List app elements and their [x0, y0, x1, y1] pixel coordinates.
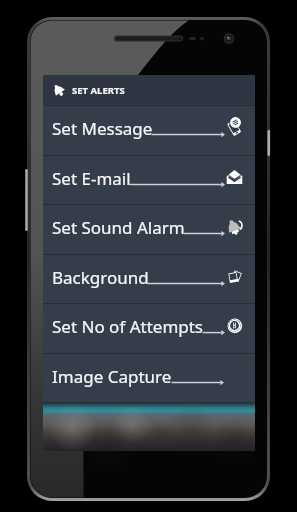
other: Sound alarm — [226, 218, 243, 235]
staticText: Set E-mail — [52, 167, 131, 190]
button[interactable]: Set Sound Alarm — [43, 205, 255, 254]
other: Attempts — [226, 317, 243, 334]
staticText: SET ALERTS — [72, 84, 125, 97]
other: Message — [226, 119, 243, 136]
button[interactable]: Background — [43, 255, 255, 303]
other: Background — [226, 268, 243, 285]
staticText: Image Capture — [52, 365, 172, 388]
other: E-mail — [226, 169, 243, 186]
button[interactable]: Set E-mail — [43, 156, 255, 204]
button[interactable]: Set Message — [43, 106, 255, 155]
staticText: Set No of Attempts — [52, 315, 204, 338]
button[interactable]: Image Capture — [43, 354, 255, 402]
button[interactable] — [43, 403, 255, 451]
button[interactable]: SET ALERTS — [43, 75, 255, 105]
staticText: Set Sound Alarm — [52, 216, 185, 239]
staticText: Set Message — [52, 117, 153, 140]
button[interactable]: Set No of Attempts — [43, 304, 255, 353]
staticText: Background — [52, 266, 149, 289]
